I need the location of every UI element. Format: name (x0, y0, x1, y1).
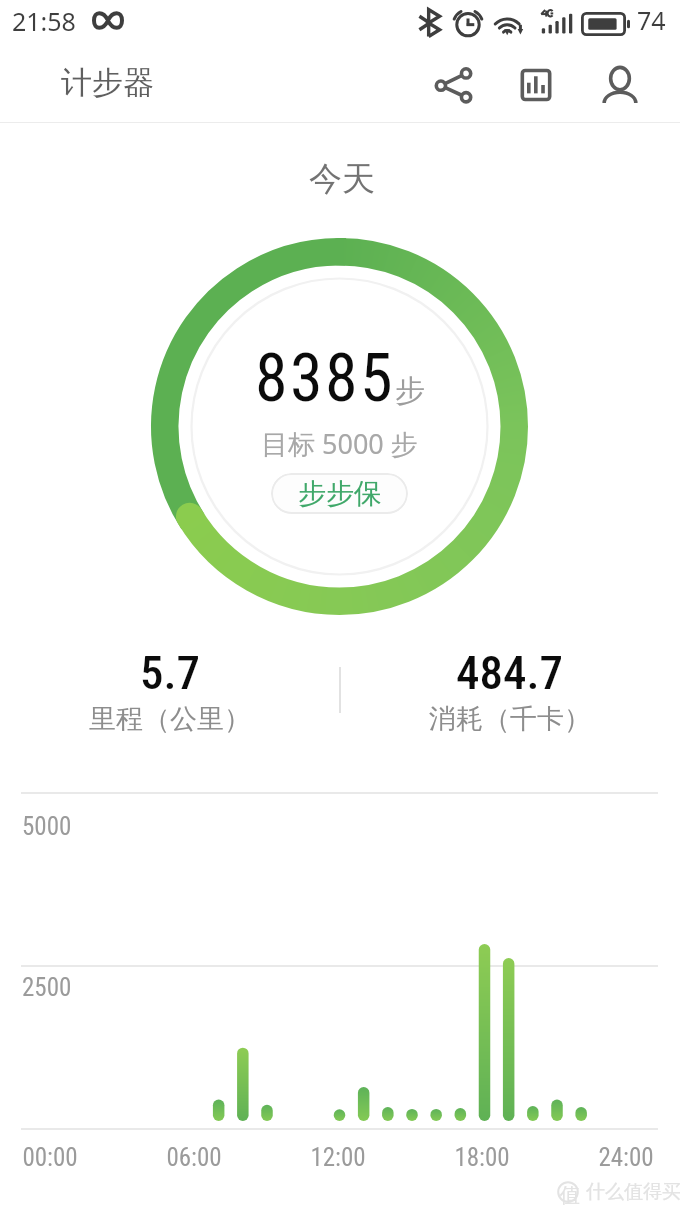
button[interactable]: Statistics (507, 56, 565, 114)
staticText: 计步器 (61, 63, 154, 102)
staticText: 24:00 (576, 1143, 676, 1172)
staticText: 步步保 (298, 476, 382, 511)
staticText: 步 (395, 372, 425, 410)
staticText: 消耗（千卡） (429, 702, 591, 736)
button[interactable]: Share (424, 56, 482, 114)
staticText: 12:00 (288, 1143, 388, 1172)
staticText: 今天 (309, 158, 375, 200)
staticText: 什么值得买 (586, 1180, 680, 1204)
staticText: 00:00 (0, 1143, 100, 1172)
button[interactable]: Profile (591, 56, 649, 114)
staticText: 18:00 (432, 1143, 532, 1172)
staticText: 里程（公里） (89, 702, 251, 736)
staticText: 8385 (255, 340, 395, 417)
staticText: 484.7 (456, 645, 564, 700)
staticText: 2500 (22, 973, 72, 1002)
staticText: 5.7 (140, 645, 201, 700)
staticText: 目标 5000 步 (261, 425, 418, 462)
button[interactable]: 步步保 (271, 473, 408, 514)
staticText: 5000 (22, 812, 72, 841)
staticText: 06:00 (144, 1143, 244, 1172)
staticText: 21:58 (12, 4, 76, 38)
staticText: 74 (637, 3, 666, 37)
staticText: 值 (560, 1183, 580, 1208)
